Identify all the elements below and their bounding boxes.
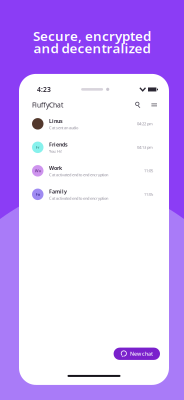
staticText: Cat sent an audio [49,125,78,130]
staticText: Friends [49,141,68,148]
staticText: 04:22 pm [137,121,153,126]
staticText: 4:23 [37,85,51,94]
staticText: FluffyChat [32,100,63,109]
staticText: New chat [130,350,153,357]
staticText: Wo [35,168,41,173]
button[interactable]: Linus [19,112,169,136]
staticText: 04:13 pm [137,145,153,150]
staticText: 11:05 [144,168,153,173]
button[interactable]: Search [132,100,143,110]
button[interactable]: Wo [19,159,169,183]
staticText: 11:05 [144,192,153,197]
button[interactable]: Fr [19,136,169,159]
staticText: Fa [36,192,40,197]
staticText: You: Hi! [49,148,62,154]
button[interactable]: Menu [143,100,158,109]
staticText: Work [49,164,62,171]
staticText: Linus [49,117,63,124]
staticText: Cat activated end to end encryption [49,195,108,201]
staticText: Cat activated end to end encryption [49,172,108,177]
staticText: Family [49,188,67,195]
button[interactable]: Fa [19,183,169,206]
staticText: Fr [36,145,40,150]
button[interactable]: New chat [114,348,160,360]
staticText: Secure, encrypted [33,27,151,45]
staticText: and decentralized [33,39,150,57]
